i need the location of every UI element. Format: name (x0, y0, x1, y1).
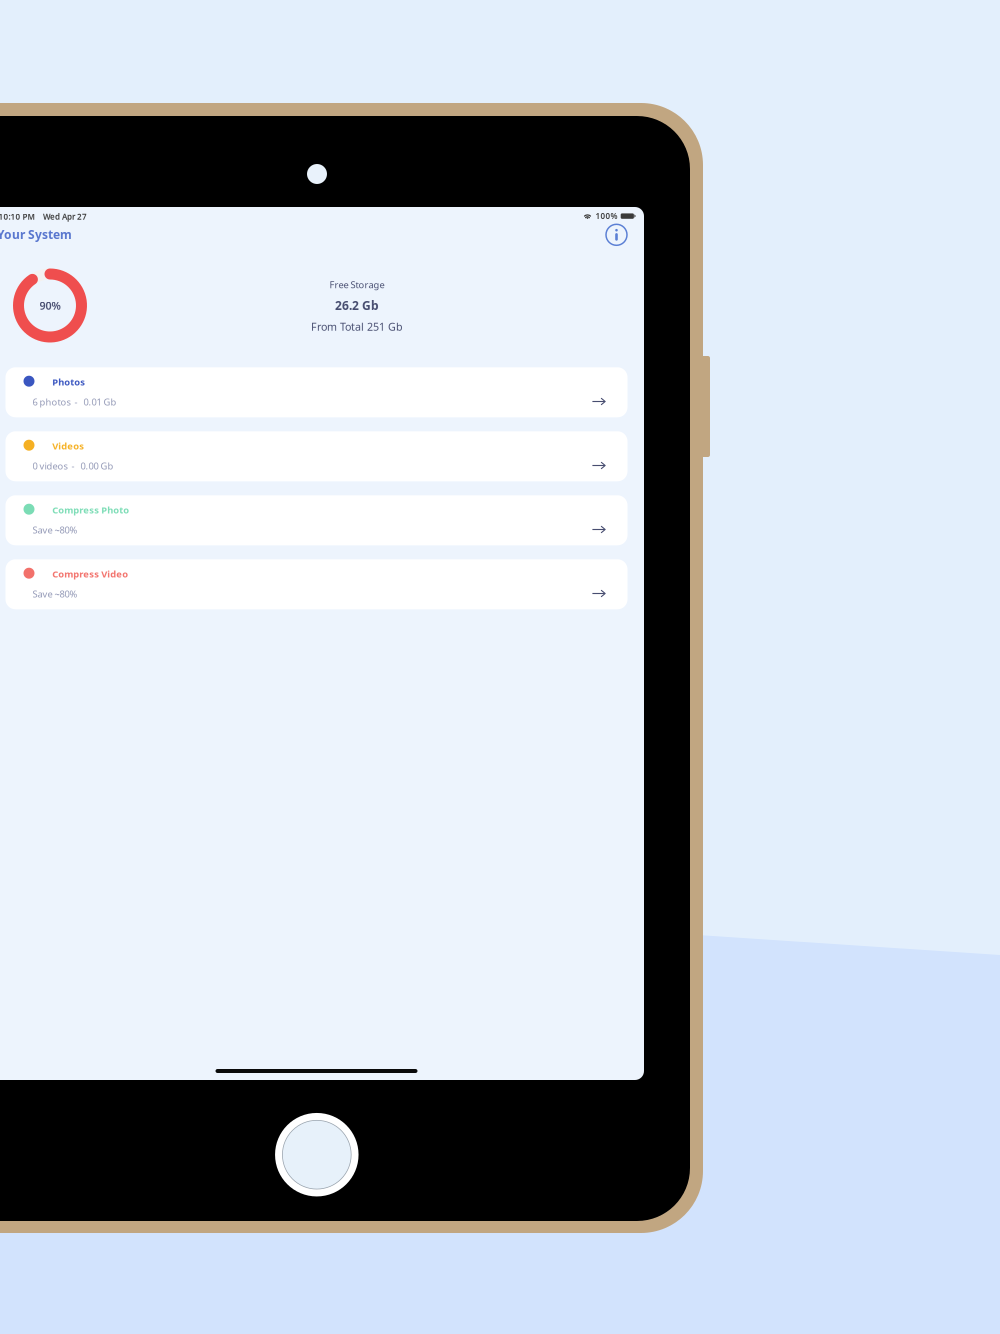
staticText: 100% (596, 211, 618, 221)
staticText: Free Storage (329, 278, 384, 291)
button[interactable]: Compress Photo (5, 495, 627, 545)
button[interactable]: Compress Video (5, 559, 627, 609)
staticText: Compress Video (52, 568, 128, 580)
staticText: 0 videos - 0.00 Gb (32, 460, 113, 472)
button[interactable]: Videos (5, 431, 627, 481)
staticText: Save ~80% (32, 588, 77, 600)
staticText: Wed Apr 27 (43, 211, 87, 222)
staticText: 26.2 Gb (335, 297, 379, 313)
staticText: 90% (39, 298, 60, 313)
staticText: Compress Photo (52, 504, 129, 516)
staticText: Photos (52, 376, 85, 388)
staticText: 6 photos - 0.01 Gb (32, 396, 116, 408)
staticText: From Total 251 Gb (311, 319, 403, 334)
staticText: Save ~80% (32, 524, 77, 536)
staticText: 10:10 PM (0, 211, 34, 222)
button[interactable]: Information (606, 224, 627, 245)
staticText: Videos (52, 440, 84, 452)
staticText: Your System (0, 226, 72, 242)
button[interactable]: Photos (5, 367, 627, 417)
